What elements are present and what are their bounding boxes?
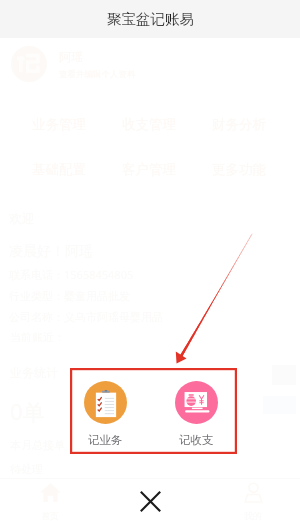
button[interactable]: Close	[127, 478, 173, 521]
staticText: 财务分析	[212, 116, 266, 133]
staticText: 记收支	[179, 433, 214, 447]
button[interactable]: 记收支	[172, 381, 221, 447]
staticText: 业务管理	[32, 116, 86, 133]
staticText: 收支管理	[122, 116, 176, 133]
button[interactable]: 记业务	[81, 381, 130, 447]
staticText: 查看并编辑个人资料	[59, 69, 136, 80]
staticText: 聚宝盆记账易	[107, 10, 194, 28]
button[interactable]: 记业务	[70, 368, 237, 454]
staticText: 阿瑶	[59, 49, 83, 64]
staticText: 更多功能	[212, 161, 266, 178]
staticText: 客户管理	[122, 161, 176, 178]
staticText: 基础配置	[32, 161, 86, 178]
staticText: 记业务	[88, 433, 123, 447]
